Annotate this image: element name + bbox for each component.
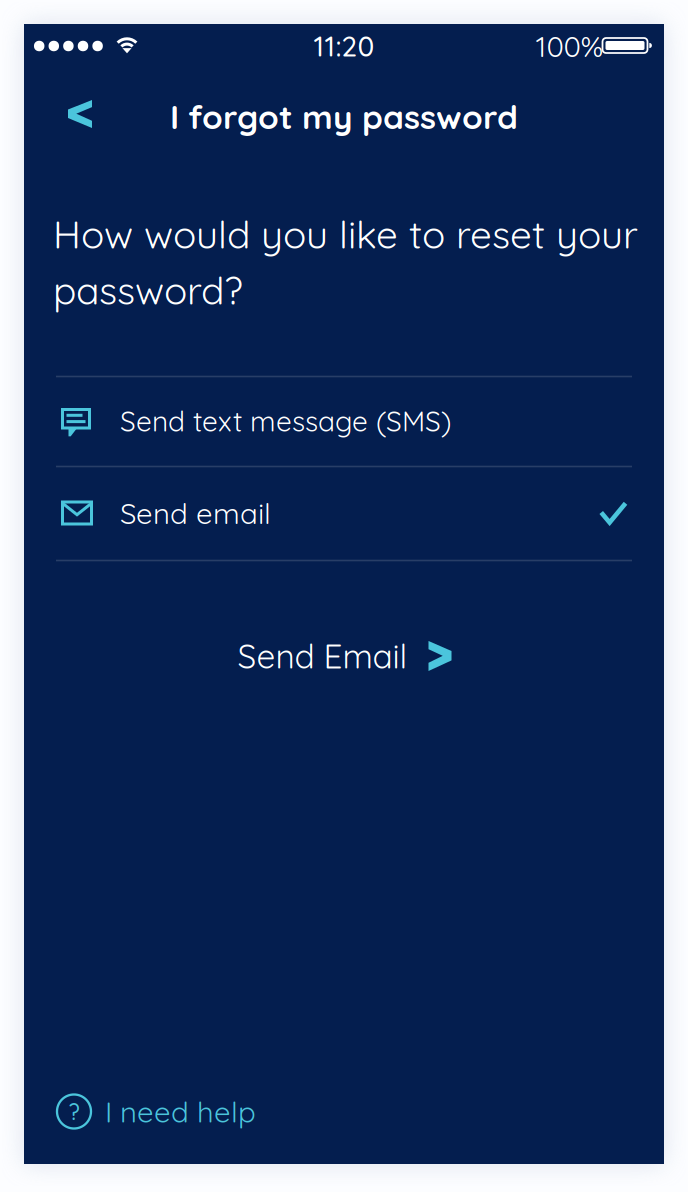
button[interactable]: Send email — [61, 467, 632, 559]
staticText: ? — [68, 1098, 79, 1125]
button[interactable]: ? — [57, 1089, 633, 1133]
button[interactable]: Back — [58, 89, 102, 138]
button[interactable]: Send Email — [227, 628, 461, 684]
staticText: I need help — [105, 1094, 256, 1129]
staticText: password? — [53, 266, 243, 314]
staticText: How would you like to reset your — [53, 210, 638, 257]
staticText: Send email — [120, 495, 271, 531]
staticText: Send Email — [237, 636, 407, 676]
button[interactable]: Send text message (SMS) — [61, 377, 632, 465]
staticText: 11:20 — [313, 29, 374, 63]
staticText: Send text message (SMS) — [120, 404, 451, 438]
staticText: I forgot my password — [170, 96, 518, 137]
staticText: 100% — [535, 28, 603, 64]
